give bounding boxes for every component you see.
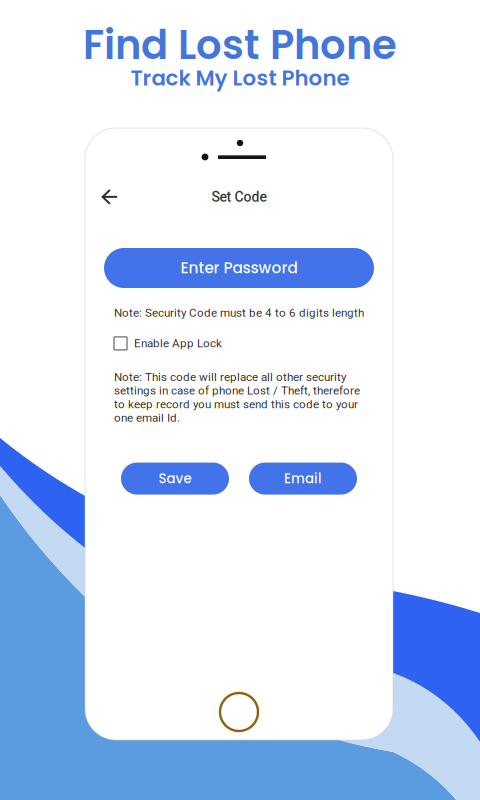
staticText: Note: This code will replace all other s… xyxy=(114,370,360,425)
button[interactable]: Email xyxy=(249,463,357,495)
staticText: Set Code xyxy=(211,189,266,205)
staticText: Enter Password xyxy=(180,257,297,279)
staticText: Save xyxy=(158,469,191,488)
staticText: Track My Lost Phone xyxy=(130,63,349,93)
button[interactable]: Enter Password xyxy=(104,248,374,288)
staticText: Find Lost Phone xyxy=(83,17,397,73)
button[interactable]: Save xyxy=(121,463,229,495)
button[interactable]: Back xyxy=(85,182,119,212)
button[interactable]: Home xyxy=(220,693,258,731)
staticText: Note: Security Code must be 4 to 6 digit… xyxy=(114,306,364,320)
staticText: Email xyxy=(284,469,322,488)
staticText: Enable App Lock xyxy=(134,337,222,350)
